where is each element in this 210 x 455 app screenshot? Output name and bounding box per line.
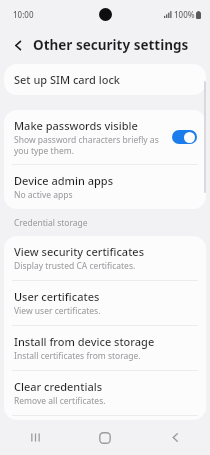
staticText: Clear credentials — [14, 379, 103, 394]
button[interactable]: User certificates — [4, 281, 206, 325]
staticText: Make passwords visible — [14, 118, 138, 133]
button[interactable]: Navigate up — [5, 32, 31, 58]
button[interactable]: Home — [70, 420, 140, 455]
staticText: Install certificates from storage. — [14, 350, 141, 362]
button[interactable]: Back — [140, 420, 210, 455]
staticText: Remove all certificates. — [14, 395, 106, 407]
staticText: View security certificates — [14, 244, 145, 259]
button[interactable]: Install from device storage — [4, 326, 206, 370]
button[interactable]: Set up SIM card lock — [4, 64, 206, 95]
staticText: Set up SIM card lock — [14, 72, 120, 87]
staticText: Other security settings — [33, 36, 189, 54]
staticText: User certificates — [14, 289, 100, 304]
staticText: Device admin apps — [14, 173, 114, 188]
button[interactable]: Device admin apps — [4, 165, 206, 209]
button[interactable]: Recent apps — [0, 420, 70, 455]
button[interactable]: Clear credentials — [4, 371, 206, 415]
staticText: View user certificates. — [14, 305, 101, 317]
staticText: 10:00 — [13, 9, 34, 20]
staticText: 100% — [174, 9, 195, 20]
staticText: Display trusted CA certificates. — [14, 260, 136, 272]
staticText: No active apps — [14, 189, 73, 201]
staticText: Credential storage — [14, 217, 88, 229]
button[interactable]: Make passwords visible — [4, 110, 206, 164]
staticText: Install from device storage — [14, 334, 155, 349]
staticText: Show password characters briefly as you … — [14, 134, 166, 156]
button[interactable]: Make passwords visible, on — [172, 130, 197, 144]
button[interactable]: View security certificates — [4, 236, 206, 280]
